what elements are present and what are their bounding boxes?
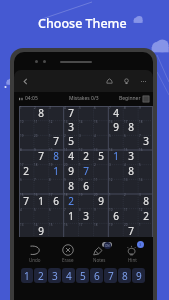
button[interactable]: 18 [138, 120, 153, 134]
button[interactable]: 5 [108, 134, 123, 148]
button[interactable]: 1 [108, 193, 123, 208]
button[interactable]: 17 [78, 223, 93, 238]
button[interactable]: 3 [48, 106, 63, 120]
button[interactable]: 10 [19, 120, 33, 134]
button[interactable]: 14 [138, 178, 153, 193]
button[interactable]: 16 [108, 120, 123, 134]
button[interactable]: Notifications [103, 75, 115, 87]
button[interactable]: 8 [118, 268, 131, 283]
button[interactable]: 2 [33, 106, 48, 120]
button[interactable]: 3 [108, 163, 123, 178]
button[interactable]: 8 [78, 208, 93, 223]
button[interactable]: 4 [93, 134, 108, 148]
button[interactable]: 13 [123, 178, 138, 193]
button[interactable]: 3 [121, 243, 144, 263]
button[interactable]: 20 [33, 134, 48, 148]
button[interactable]: 12 [48, 120, 63, 134]
button[interactable]: ON [88, 243, 111, 263]
button[interactable]: 10 [108, 208, 123, 223]
button[interactable]: 6 [93, 106, 108, 120]
button[interactable]: 17 [48, 193, 63, 208]
button[interactable]: 2 [34, 268, 47, 283]
button[interactable]: 16 [33, 193, 48, 208]
button[interactable]: 6 [19, 178, 33, 193]
button[interactable]: 10 [78, 178, 93, 193]
button[interactable]: 7 [104, 268, 117, 283]
staticText: 3 [52, 269, 58, 283]
button[interactable]: 12 [108, 178, 123, 193]
button[interactable]: 20 [63, 163, 78, 178]
button[interactable]: 13 [19, 223, 33, 238]
button[interactable]: 19 [78, 193, 93, 208]
button[interactable]: 16 [63, 223, 78, 238]
button[interactable]: 7 [138, 134, 153, 148]
button[interactable]: 20 [93, 193, 108, 208]
button[interactable]: 14 [108, 148, 123, 163]
button[interactable]: 7 [108, 106, 123, 120]
button[interactable]: 15 [48, 223, 63, 238]
button[interactable]: 9 [63, 178, 78, 193]
button[interactable]: 2 [123, 193, 138, 208]
button[interactable]: 5 [138, 163, 153, 178]
button[interactable]: 3 [138, 193, 153, 208]
button[interactable]: 15 [123, 148, 138, 163]
button[interactable]: Undo [23, 243, 46, 263]
button[interactable]: 1 [21, 268, 33, 283]
button[interactable]: 1 [78, 163, 93, 178]
button[interactable]: 3 [78, 134, 93, 148]
button[interactable]: 8 [48, 178, 63, 193]
button[interactable]: 6 [48, 208, 63, 223]
button[interactable]: More options [137, 75, 149, 87]
button[interactable]: Theme [120, 75, 132, 87]
button[interactable]: 7 [63, 208, 78, 223]
button[interactable]: 4 [62, 268, 75, 283]
button[interactable]: 8 [123, 106, 138, 120]
button[interactable]: 11 [93, 178, 108, 193]
button[interactable]: 18 [93, 223, 108, 238]
button[interactable]: 11 [123, 208, 138, 223]
button[interactable]: 8 [19, 148, 33, 163]
button[interactable]: 15 [93, 120, 108, 134]
button[interactable]: 9 [93, 208, 108, 223]
button[interactable]: 18 [33, 163, 48, 178]
button[interactable]: Erase [56, 243, 79, 263]
button[interactable]: 13 [93, 148, 108, 163]
button[interactable]: 5 [76, 268, 89, 283]
button[interactable]: 19 [48, 163, 63, 178]
button[interactable]: 4 [63, 106, 78, 120]
button[interactable]: Back [18, 74, 32, 88]
button[interactable]: 9 [132, 268, 145, 283]
button[interactable]: 7 [33, 178, 48, 193]
button[interactable]: 5 [33, 208, 48, 223]
button[interactable]: 12 [138, 208, 153, 223]
button[interactable]: 5 [78, 106, 93, 120]
button[interactable]: 16 [138, 148, 153, 163]
button[interactable]: 14 [33, 223, 48, 238]
button[interactable]: 10 [48, 148, 63, 163]
button[interactable]: 6 [123, 134, 138, 148]
button[interactable]: 6 [90, 268, 103, 283]
button[interactable]: 11 [33, 120, 48, 134]
button[interactable]: 15 [19, 193, 33, 208]
button[interactable]: 3 [48, 268, 61, 283]
button[interactable]: 14 [78, 120, 93, 134]
button[interactable]: 13 [63, 120, 78, 134]
button[interactable]: 20 [123, 223, 138, 238]
button[interactable]: 4 [19, 208, 33, 223]
button[interactable]: 19 [19, 134, 33, 148]
button[interactable]: 9 [33, 148, 48, 163]
button[interactable]: 4 [123, 163, 138, 178]
button[interactable]: 1 [138, 223, 153, 238]
button[interactable]: 1 [19, 106, 33, 120]
button[interactable]: 12 [78, 148, 93, 163]
button[interactable]: 17 [19, 163, 33, 178]
button[interactable]: 2 [93, 163, 108, 178]
button[interactable]: 17 [123, 120, 138, 134]
button[interactable]: 11 [63, 148, 78, 163]
button[interactable]: 9 [138, 106, 153, 120]
button[interactable]: 1 [48, 134, 63, 148]
button[interactable]: 18 [63, 193, 78, 208]
staticText: 8 [53, 149, 59, 163]
button[interactable]: 19 [108, 223, 123, 238]
button[interactable]: 2 [63, 134, 78, 148]
